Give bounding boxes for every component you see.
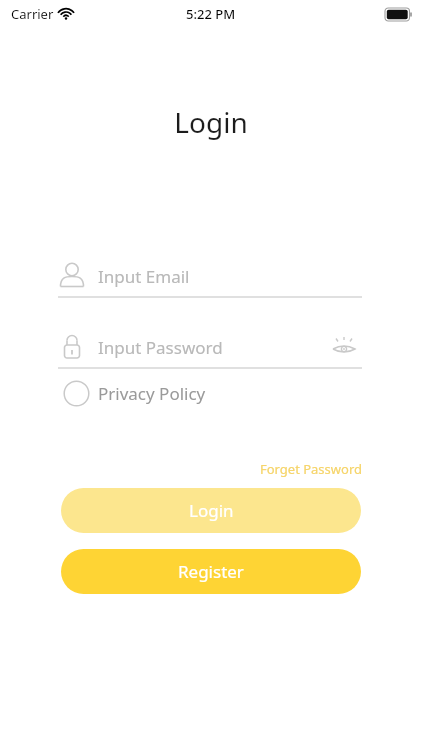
button[interactable]: Privacy Policy (63, 378, 206, 409)
staticText: Forget Password (259, 460, 362, 478)
staticText: Input Email (98, 265, 190, 288)
staticText: Register (178, 560, 244, 583)
button[interactable]: Input Email (58, 258, 362, 298)
staticText: Input Password (98, 336, 223, 359)
staticText: Login (174, 103, 248, 141)
button[interactable]: Login (61, 488, 361, 533)
button[interactable]: Register (61, 549, 361, 594)
button[interactable]: Forget Password (232, 458, 362, 480)
staticText: Carrier (11, 5, 54, 23)
button[interactable]: Input Password (58, 330, 362, 369)
staticText: Login (189, 499, 234, 522)
staticText: Privacy Policy (98, 382, 206, 405)
staticText: 5:22 PM (186, 5, 236, 23)
